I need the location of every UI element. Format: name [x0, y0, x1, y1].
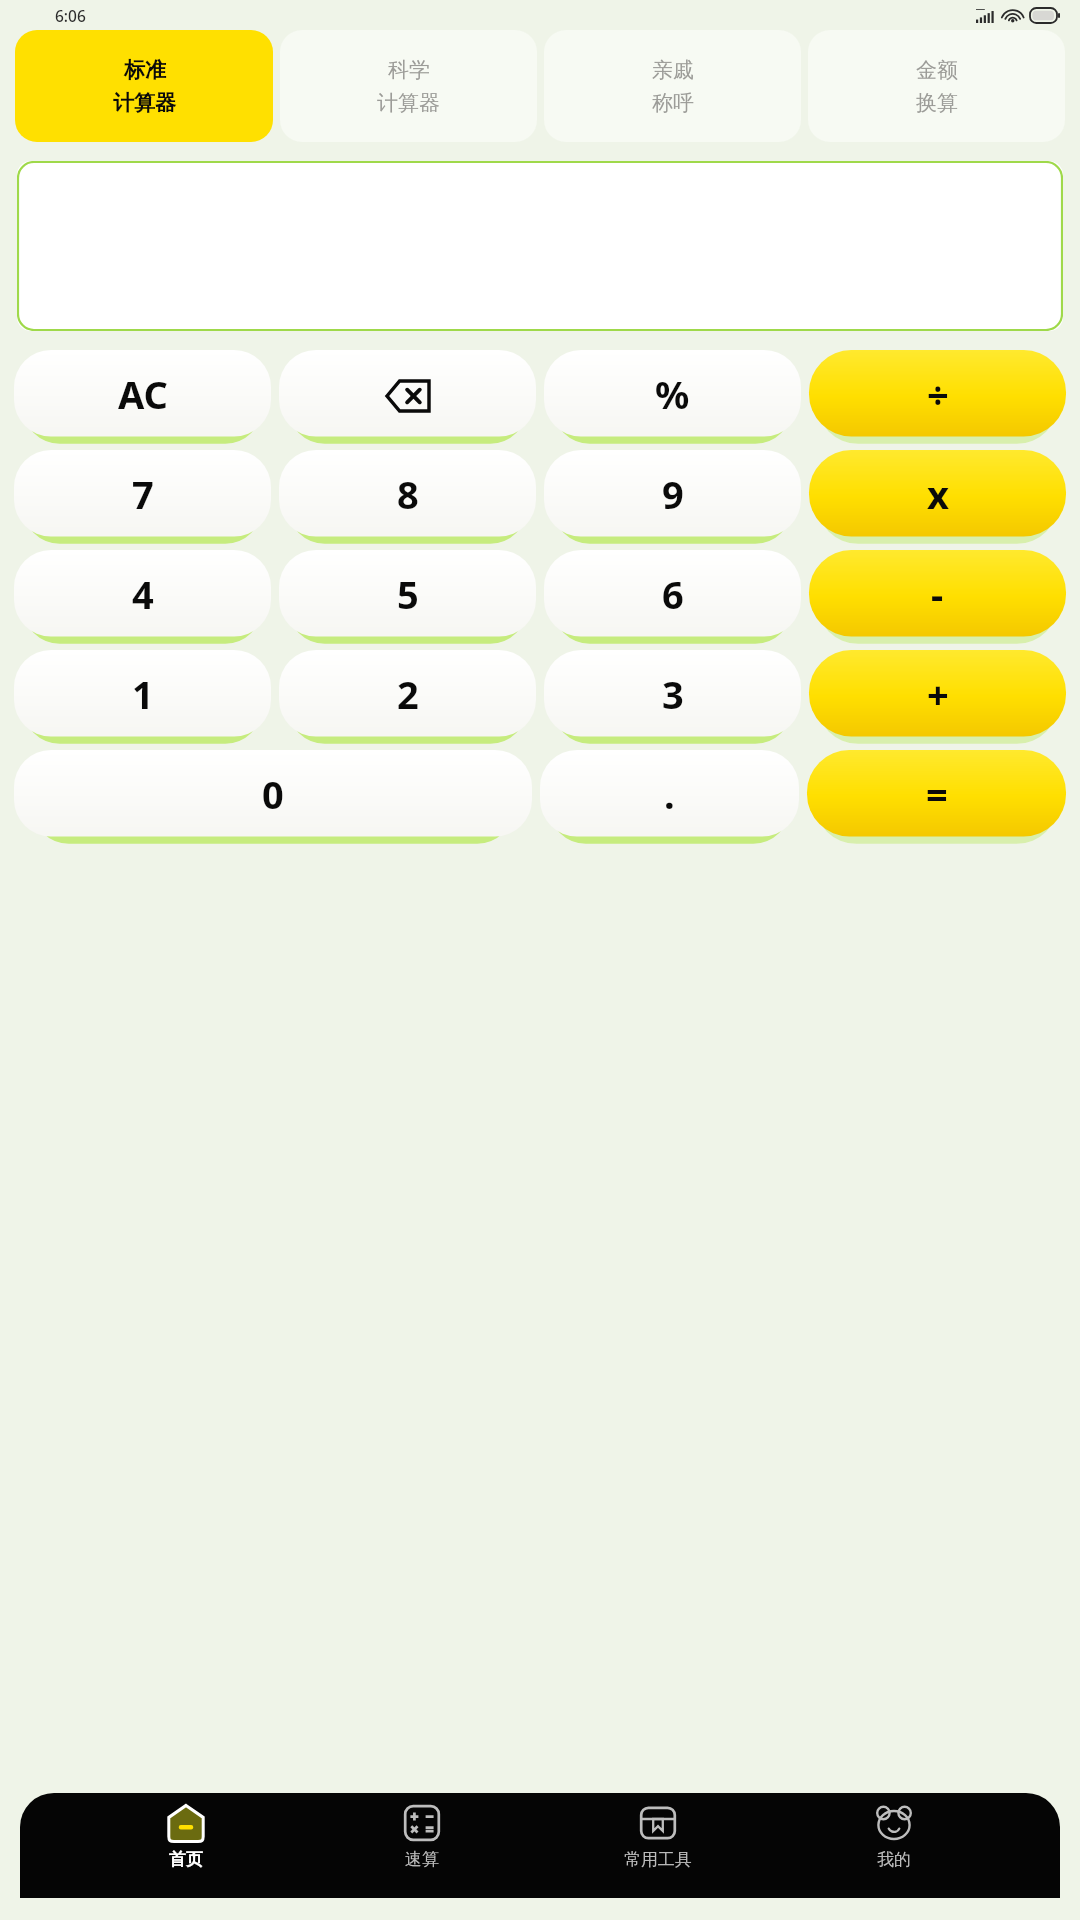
- button[interactable]: AC: [14, 350, 271, 442]
- staticText: 科学: [388, 57, 430, 83]
- button[interactable]: -: [809, 550, 1066, 642]
- button[interactable]: %: [544, 350, 801, 442]
- staticText: 我的: [877, 1849, 911, 1870]
- button[interactable]: 3: [544, 650, 801, 742]
- staticText: =: [926, 768, 948, 820]
- staticText: .: [664, 768, 675, 820]
- staticText: AC: [118, 368, 168, 420]
- staticText: 标准: [124, 57, 166, 83]
- button[interactable]: 7: [14, 450, 271, 542]
- button[interactable]: 1: [14, 650, 271, 742]
- staticText: 5: [397, 568, 419, 620]
- staticText: 6:06: [55, 5, 86, 26]
- button[interactable]: 8: [279, 450, 536, 542]
- staticText: 4: [132, 568, 154, 620]
- staticText: 换算: [916, 90, 958, 116]
- button[interactable]: 常用工具: [588, 1803, 728, 1898]
- button[interactable]: 标准: [15, 30, 273, 142]
- staticText: 0: [262, 768, 284, 820]
- staticText: 速算: [405, 1849, 439, 1870]
- staticText: 称呼: [652, 90, 694, 116]
- button[interactable]: 我的: [824, 1803, 964, 1898]
- staticText: 首页: [169, 1849, 203, 1870]
- staticText: ÷: [927, 368, 949, 420]
- button[interactable]: 金额: [808, 30, 1065, 142]
- staticText: +: [927, 668, 949, 720]
- button[interactable]: 4: [14, 550, 271, 642]
- staticText: 3: [662, 668, 684, 720]
- staticText: 7: [132, 468, 154, 520]
- staticText: 9: [662, 468, 684, 520]
- button[interactable]: +: [809, 650, 1066, 742]
- button[interactable]: Backspace: [279, 350, 536, 442]
- staticText: -: [931, 568, 944, 620]
- staticText: x: [927, 468, 949, 520]
- staticText: 金额: [916, 57, 958, 83]
- button[interactable]: ÷: [809, 350, 1066, 442]
- button[interactable]: 首页: [116, 1803, 256, 1898]
- staticText: 计算器: [113, 90, 176, 116]
- staticText: 亲戚: [652, 57, 694, 83]
- button[interactable]: =: [807, 750, 1066, 842]
- button[interactable]: 0: [14, 750, 532, 842]
- button[interactable]: 9: [544, 450, 801, 542]
- staticText: %: [655, 368, 690, 420]
- staticText: 2: [397, 668, 419, 720]
- button[interactable]: 2: [279, 650, 536, 742]
- button[interactable]: 速算: [352, 1803, 492, 1898]
- button[interactable]: 5: [279, 550, 536, 642]
- button[interactable]: .: [540, 750, 799, 842]
- staticText: 计算器: [377, 90, 440, 116]
- staticText: 常用工具: [624, 1849, 692, 1870]
- button[interactable]: 亲戚: [544, 30, 801, 142]
- button[interactable]: 科学: [280, 30, 537, 142]
- button[interactable]: x: [809, 450, 1066, 542]
- staticText: 8: [397, 468, 419, 520]
- button[interactable]: 6: [544, 550, 801, 642]
- staticText: 6: [662, 568, 684, 620]
- staticText: 1: [132, 668, 154, 720]
